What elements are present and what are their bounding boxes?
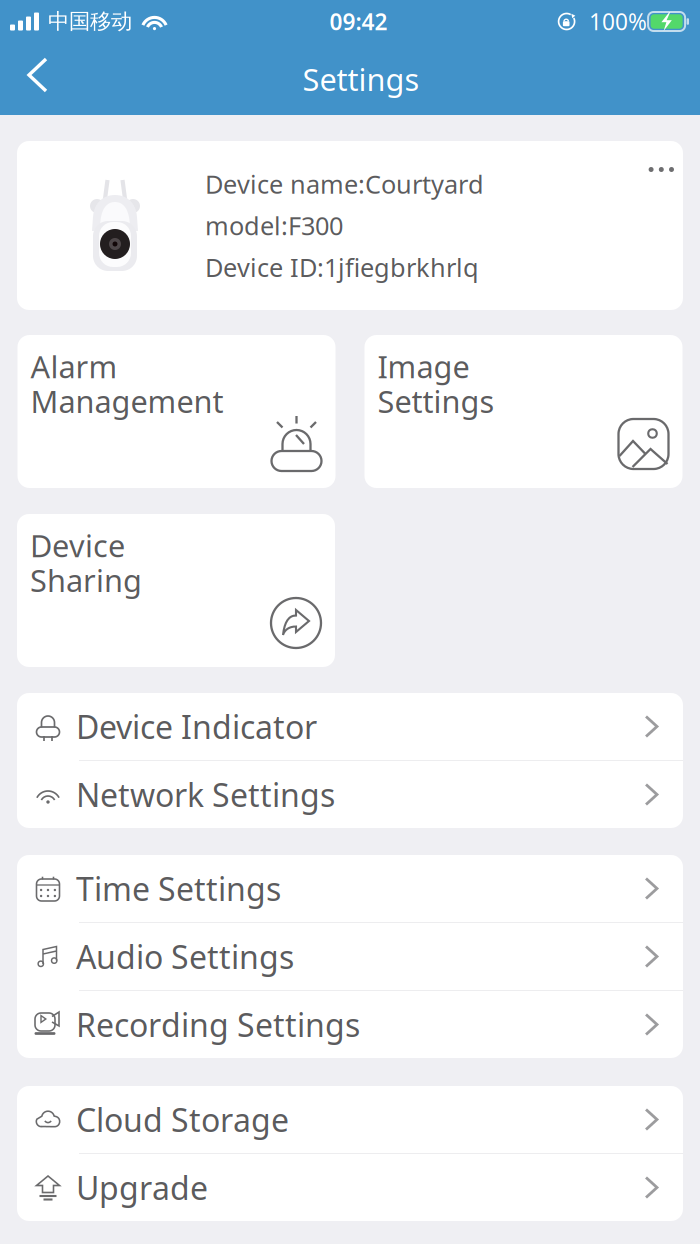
button[interactable]: Recording Settings (17, 991, 683, 1058)
button[interactable]: Time Settings (17, 855, 683, 922)
staticText: 中国移动 (48, 8, 132, 35)
staticText: 09:42 (330, 6, 388, 36)
staticText: Sharing (30, 560, 142, 600)
staticText: Upgrade (76, 1166, 208, 1209)
button[interactable]: Upgrade (17, 1154, 683, 1221)
staticText: Image (377, 346, 469, 387)
staticText: Alarm (30, 346, 117, 387)
button[interactable]: Image (364, 335, 682, 488)
staticText: Device Indicator (76, 705, 317, 748)
button[interactable]: Audio Settings (17, 923, 683, 990)
staticText: Cloud Storage (76, 1098, 289, 1141)
staticText: Recording Settings (76, 1003, 360, 1046)
staticText: Device name:Courtyard (205, 167, 484, 201)
staticText: Settings (302, 59, 419, 99)
staticText: Device ID:1jfiegbrkhrlq (205, 250, 479, 284)
button[interactable]: Alarm (17, 335, 335, 488)
staticText: Settings (377, 381, 494, 421)
staticText: Time Settings (76, 867, 281, 910)
staticText: Management (30, 381, 223, 421)
button[interactable]: Network Settings (17, 761, 683, 828)
staticText: model:F300 (205, 209, 343, 242)
staticText: Device (30, 525, 125, 566)
button[interactable]: Device Indicator (17, 693, 683, 760)
button[interactable]: Back (0, 49, 58, 109)
button[interactable]: Device (17, 514, 335, 667)
staticText: 100% (589, 6, 647, 36)
button[interactable]: More options (635, 141, 683, 186)
staticText: Audio Settings (76, 935, 294, 978)
staticText: Network Settings (76, 773, 335, 816)
button[interactable]: Cloud Storage (17, 1086, 683, 1153)
